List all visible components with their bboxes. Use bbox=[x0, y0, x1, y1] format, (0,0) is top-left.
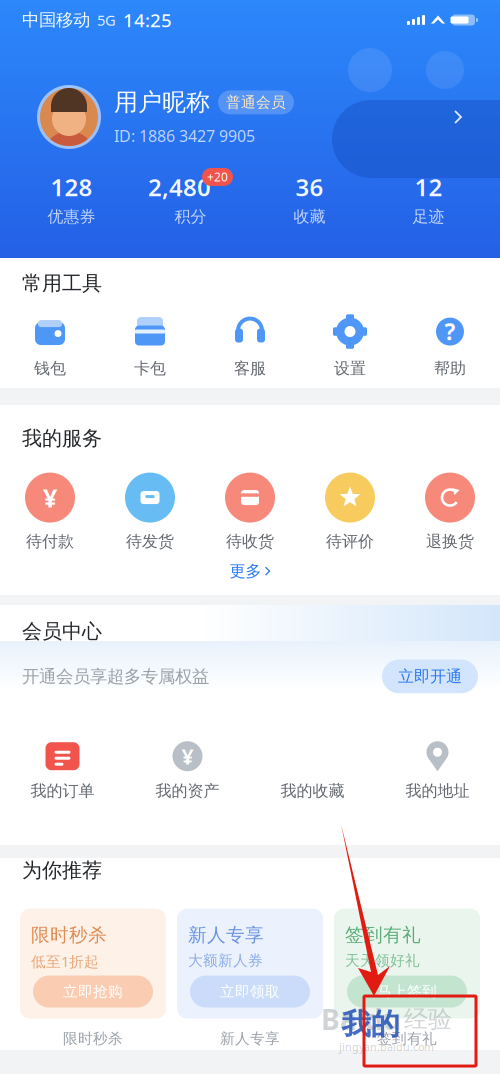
button[interactable]: 待评价 bbox=[300, 473, 400, 551]
button[interactable]: 退换货 bbox=[400, 473, 500, 551]
staticText: 我的资产 bbox=[155, 781, 219, 801]
button[interactable]: ¥ bbox=[0, 473, 100, 551]
staticText: ¥ bbox=[43, 481, 57, 514]
staticText: 待评价 bbox=[326, 532, 374, 551]
staticText: 我的 bbox=[341, 1006, 399, 1042]
button[interactable]: 设置 bbox=[300, 315, 400, 378]
staticText: 卡包 bbox=[134, 359, 166, 378]
button[interactable]: 128 bbox=[12, 168, 131, 229]
staticText: 待发货 bbox=[126, 532, 174, 551]
staticText: 12 bbox=[414, 171, 442, 203]
staticText: 待收货 bbox=[226, 532, 274, 551]
staticText: 36 bbox=[295, 171, 323, 203]
staticText: 钱包 bbox=[34, 359, 66, 378]
button[interactable]: 新人专享 bbox=[177, 909, 323, 1048]
staticText: 中国移动 bbox=[22, 9, 90, 31]
staticText: 优惠券 bbox=[47, 207, 95, 227]
button[interactable]: 更多 bbox=[0, 561, 500, 595]
staticText: 天天领好礼 bbox=[345, 951, 420, 969]
staticText: 我的服务 bbox=[22, 426, 102, 451]
staticText: 足迹 bbox=[412, 207, 444, 227]
button[interactable]: 立即开通 bbox=[382, 660, 478, 693]
staticText: 我的订单 bbox=[30, 781, 94, 801]
staticText: 低至1折起 bbox=[31, 951, 99, 971]
staticText: 普通会员 bbox=[226, 93, 286, 111]
staticText: 立即开通 bbox=[398, 667, 462, 686]
button[interactable]: 卡包 bbox=[100, 315, 200, 378]
staticText: 会员中心 bbox=[22, 619, 102, 644]
staticText: 马上签到 bbox=[377, 982, 437, 1000]
staticText: 退换货 bbox=[426, 532, 474, 551]
staticText: 立即领取 bbox=[220, 982, 280, 1000]
button[interactable]: 客服 bbox=[200, 315, 300, 378]
staticText: 设置 bbox=[334, 359, 366, 378]
staticText: 我的收藏 bbox=[280, 781, 344, 801]
staticText: 签到有礼 bbox=[345, 924, 421, 946]
staticText: 新人专享 bbox=[188, 924, 264, 946]
staticText: Baidu bbox=[321, 1001, 401, 1038]
staticText: ? bbox=[444, 316, 455, 347]
staticText: +20 bbox=[207, 169, 228, 185]
button[interactable]: 我的收藏 bbox=[250, 740, 375, 801]
staticText: 帮助 bbox=[434, 359, 466, 378]
staticText: 2,480 bbox=[148, 171, 211, 203]
staticText: ¥ bbox=[181, 742, 193, 770]
staticText: 我的地址 bbox=[405, 781, 469, 801]
button[interactable]: 待发货 bbox=[100, 473, 200, 551]
staticText: jingyan.baidu.com bbox=[339, 1040, 434, 1054]
button[interactable]: 钱包 bbox=[0, 315, 100, 378]
staticText: 签到有礼 bbox=[377, 1030, 437, 1048]
staticText: 收藏 bbox=[293, 207, 325, 227]
staticText: 客服 bbox=[234, 359, 266, 378]
button[interactable]: 36 bbox=[250, 168, 369, 229]
staticText: 为你推荐 bbox=[22, 858, 102, 883]
staticText: ID: 1886 3427 9905 bbox=[114, 125, 255, 146]
button[interactable]: 我的订单 bbox=[0, 740, 125, 801]
button[interactable]: 12 bbox=[369, 168, 488, 229]
button[interactable]: ¥ bbox=[125, 740, 250, 801]
button[interactable]: 头像 bbox=[37, 85, 101, 149]
button[interactable]: 查看个人资料 bbox=[453, 109, 463, 125]
staticText: 新人专享 bbox=[220, 1030, 280, 1048]
button[interactable]: 签到有礼 bbox=[334, 909, 480, 1048]
button[interactable]: ? bbox=[400, 315, 500, 378]
staticText: 经验 bbox=[404, 1004, 452, 1034]
button[interactable]: 限时秒杀 bbox=[20, 909, 166, 1048]
staticText: 大额新人券 bbox=[188, 951, 263, 969]
staticText: 限时秒杀 bbox=[63, 1030, 123, 1048]
staticText: 待付款 bbox=[26, 532, 74, 551]
staticText: 限时秒杀 bbox=[31, 924, 107, 946]
button[interactable]: 我的地址 bbox=[375, 740, 500, 801]
staticText: 常用工具 bbox=[22, 271, 102, 296]
staticText: 更多 bbox=[229, 561, 261, 581]
staticText: 14:25 bbox=[123, 8, 172, 32]
staticText: 5G bbox=[97, 10, 116, 30]
staticText: 开通会员享超多专属权益 bbox=[22, 666, 209, 687]
button[interactable]: 2,480 bbox=[131, 168, 250, 229]
staticText: 128 bbox=[50, 171, 92, 203]
button[interactable]: 待收货 bbox=[200, 473, 300, 551]
staticText: 积分 bbox=[174, 207, 206, 227]
staticText: 用户昵称 bbox=[114, 88, 210, 117]
staticText: 立即抢购 bbox=[63, 982, 123, 1000]
